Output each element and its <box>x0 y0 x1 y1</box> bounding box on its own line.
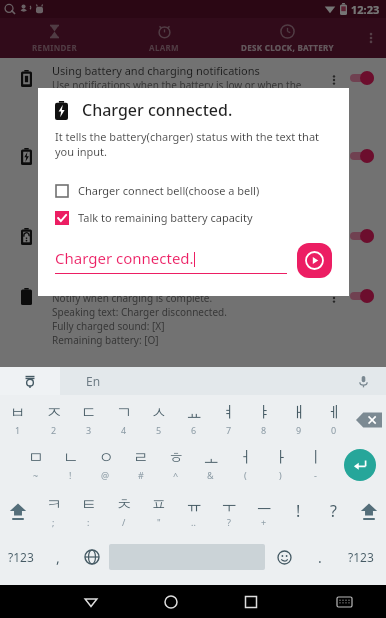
button[interactable]: ㅅ <box>141 397 176 442</box>
button[interactable] <box>348 70 378 86</box>
staticText: # <box>138 469 144 481</box>
staticText: ㅊ <box>116 495 132 515</box>
button[interactable]: ! <box>281 487 316 535</box>
staticText: .. <box>191 516 196 528</box>
button[interactable]: Back <box>69 585 112 618</box>
button[interactable]: ㅜ <box>211 487 246 535</box>
button[interactable] <box>348 148 378 164</box>
button[interactable]: ㅂ <box>0 397 36 442</box>
button[interactable]: ㄴ <box>53 442 88 487</box>
button[interactable]: Backspace <box>356 410 382 430</box>
button[interactable]: ㅋ <box>36 487 71 535</box>
staticText: 2 <box>51 424 57 436</box>
button[interactable]: ㅐ <box>281 397 316 442</box>
button[interactable]: , <box>42 535 74 579</box>
staticText: 4 <box>121 424 127 436</box>
button[interactable]: ㅔ <box>316 397 351 442</box>
staticText: 12:23 <box>351 2 380 17</box>
staticText: ~ <box>33 469 39 481</box>
staticText: ㅐ <box>291 403 307 423</box>
button[interactable]: Voice input <box>340 367 386 395</box>
staticText: " <box>157 516 161 528</box>
staticText: , <box>56 548 60 567</box>
staticText: ㄱ <box>116 403 132 423</box>
button[interactable]: Recents <box>230 585 272 618</box>
button[interactable]: DESK CLOCK, BATTERY <box>219 18 356 58</box>
staticText: ㅌ <box>81 495 97 515</box>
staticText: Notify when charging is complete. <box>52 291 213 305</box>
button[interactable]: ㅌ <box>71 487 106 535</box>
button[interactable]: ㅎ <box>158 442 193 487</box>
button[interactable]: ㅈ <box>36 397 71 442</box>
button[interactable]: Item options <box>324 228 344 248</box>
staticText: ?123 <box>348 549 374 565</box>
button[interactable]: ㅕ <box>211 397 246 442</box>
button[interactable]: ALARM <box>109 18 219 58</box>
staticText: REMINDER <box>32 42 77 53</box>
button[interactable]: ㅇ <box>88 442 123 487</box>
button[interactable]: Emoji <box>265 535 304 579</box>
staticText: 6 <box>191 424 197 436</box>
button[interactable]: ㅣ <box>298 442 333 487</box>
staticText: ㅁ <box>28 448 44 468</box>
button[interactable]: Item options <box>324 70 344 90</box>
staticText: ㅎ <box>168 448 184 468</box>
button[interactable]: Change language <box>74 535 109 579</box>
button[interactable] <box>348 228 378 244</box>
button[interactable]: ㄱ <box>106 397 141 442</box>
staticText: 7 <box>226 424 232 436</box>
button[interactable]: En <box>60 367 340 395</box>
staticText: ( <box>244 469 247 481</box>
button[interactable]: Shift <box>0 487 36 535</box>
button[interactable]: ㄹ <box>123 442 158 487</box>
button[interactable]: . <box>304 535 336 579</box>
button[interactable]: ?123 <box>336 535 386 579</box>
staticText: ㅡ <box>256 495 272 515</box>
staticText: 5 <box>156 424 162 436</box>
staticText: 8 <box>261 424 267 436</box>
staticText: ㅓ <box>238 448 254 468</box>
button[interactable]: ?123 <box>0 535 42 579</box>
button[interactable]: Shift <box>351 487 386 535</box>
button[interactable]: ? <box>316 487 351 535</box>
staticText: ALARM <box>149 42 179 53</box>
button[interactable]: Home <box>150 585 192 618</box>
staticText: Charger connected. <box>82 99 233 121</box>
button[interactable]: ㅏ <box>263 442 298 487</box>
button[interactable]: ㅛ <box>176 397 211 442</box>
button[interactable]: Keyboard <box>323 585 365 618</box>
staticText: 0 <box>331 424 337 436</box>
button[interactable]: ㅁ <box>18 442 53 487</box>
staticText: ㅗ <box>203 448 219 468</box>
button[interactable]: ㅓ <box>228 442 263 487</box>
button[interactable]: More options <box>356 18 386 58</box>
button[interactable]: REMINDER <box>0 18 109 58</box>
button[interactable]: ㄷ <box>71 397 106 442</box>
button[interactable]: ㅗ <box>193 442 228 487</box>
staticText: ㅑ <box>256 403 272 423</box>
staticText: ㅂ <box>10 403 26 423</box>
staticText: / <box>122 516 126 528</box>
button[interactable]: Play <box>297 243 332 278</box>
button[interactable]: ㅠ <box>176 487 211 535</box>
button[interactable]: Item options <box>324 288 344 308</box>
staticText: @ <box>101 469 110 481</box>
staticText: ㅔ <box>326 403 342 423</box>
button[interactable]: ㅍ <box>141 487 176 535</box>
button[interactable]: Talk to remaining battery capacity <box>55 210 332 225</box>
staticText: ) <box>279 469 282 481</box>
button[interactable]: ㅑ <box>246 397 281 442</box>
staticText: + <box>261 516 267 528</box>
button[interactable]: Enter <box>344 449 376 481</box>
button[interactable]: ㅊ <box>106 487 141 535</box>
button[interactable]: Charger connect bell(choose a bell) <box>55 183 332 198</box>
button[interactable] <box>348 288 378 304</box>
staticText: ㅛ <box>186 403 202 423</box>
button[interactable]: Korean input <box>0 367 60 395</box>
button[interactable]: ㅡ <box>246 487 281 535</box>
staticText: En <box>86 373 101 389</box>
